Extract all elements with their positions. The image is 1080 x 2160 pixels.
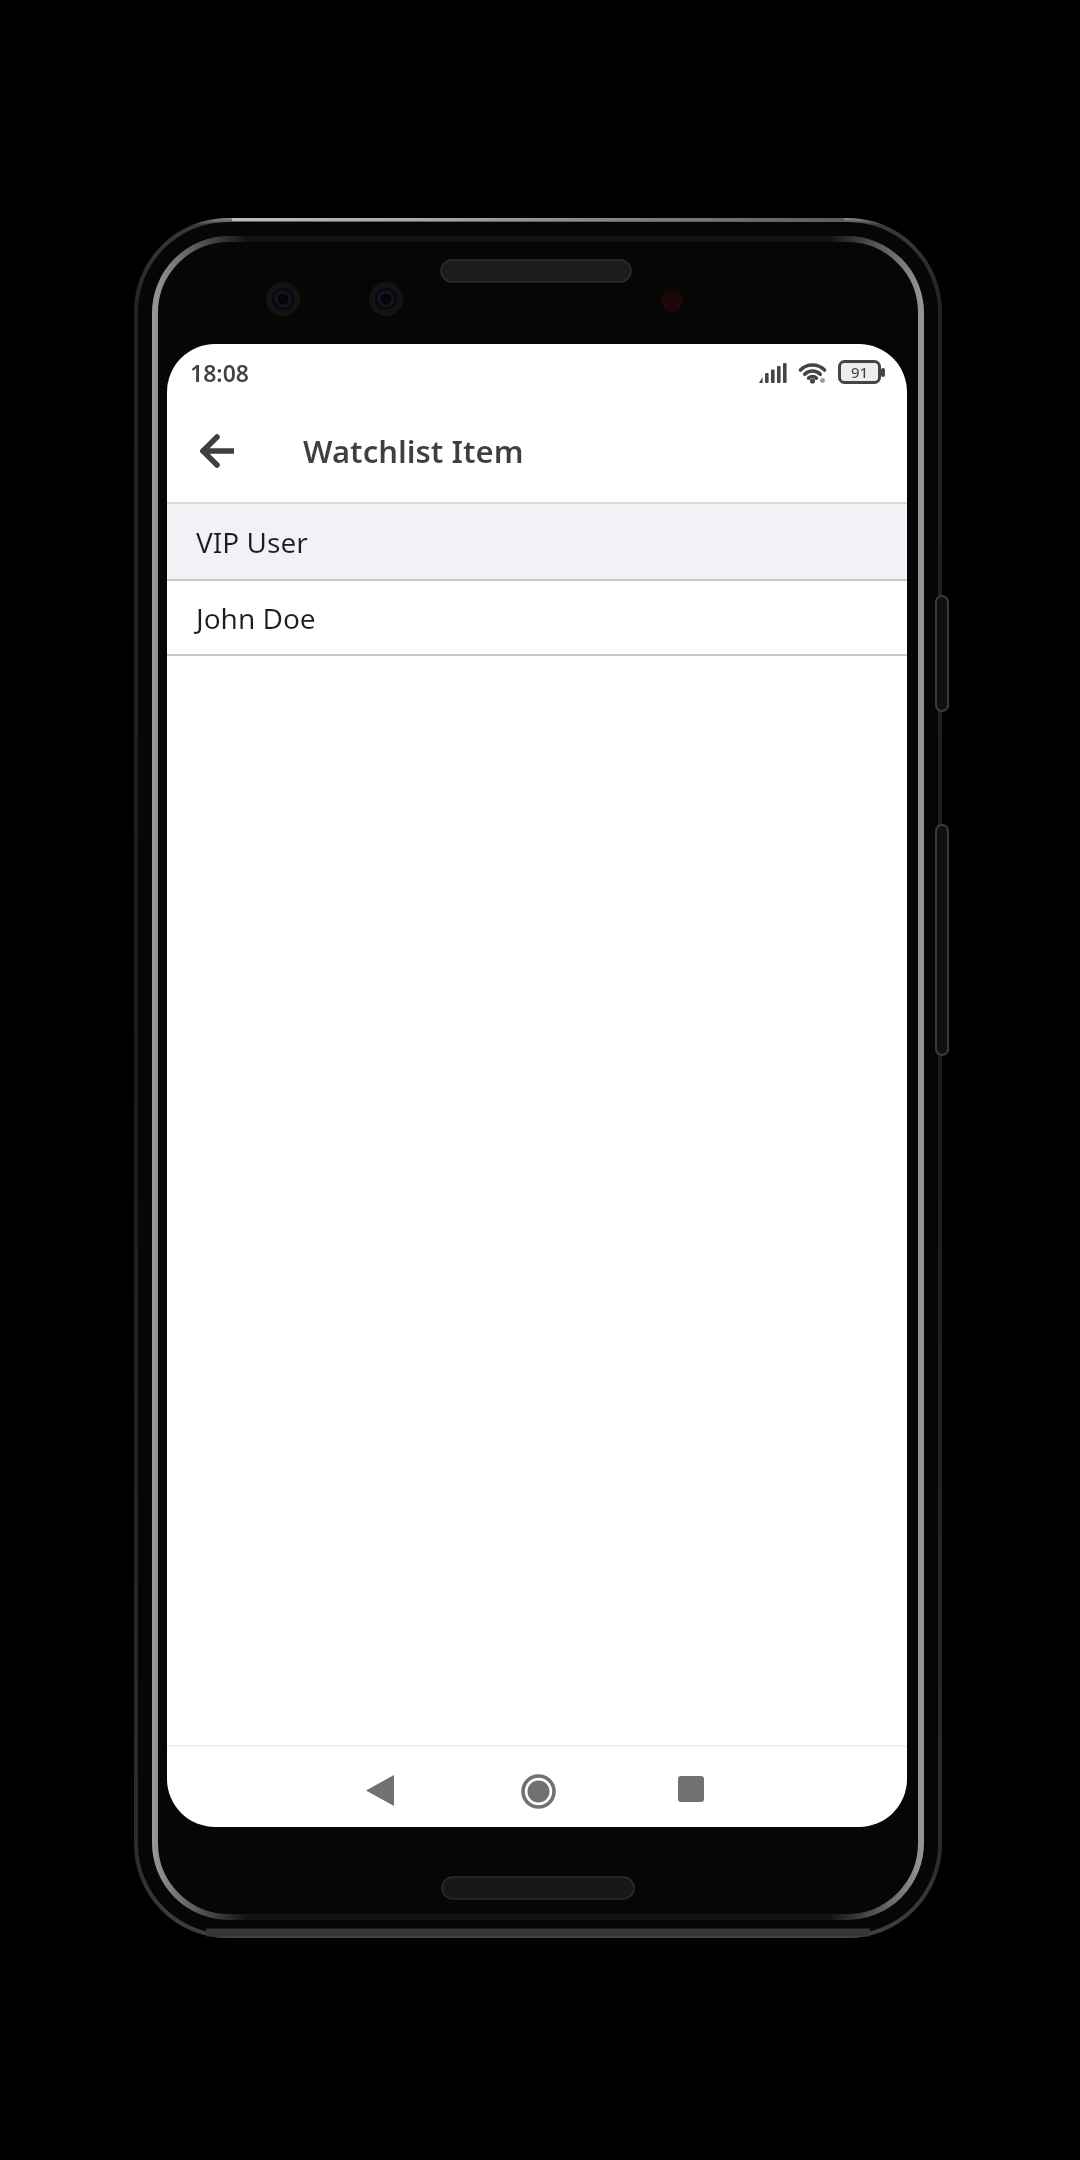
button[interactable]: [510, 1763, 566, 1819]
button[interactable]: [190, 423, 246, 479]
staticText: VIP User: [196, 523, 308, 561]
button[interactable]: [352, 1762, 408, 1818]
staticText: 18:08: [190, 357, 249, 388]
button[interactable]: VIP User: [167, 504, 907, 579]
button[interactable]: [663, 1761, 719, 1817]
button[interactable]: John Doe: [167, 581, 907, 654]
staticText: 91: [851, 362, 869, 382]
staticText: Watchlist Item: [303, 430, 524, 472]
staticText: John Doe: [196, 599, 316, 637]
